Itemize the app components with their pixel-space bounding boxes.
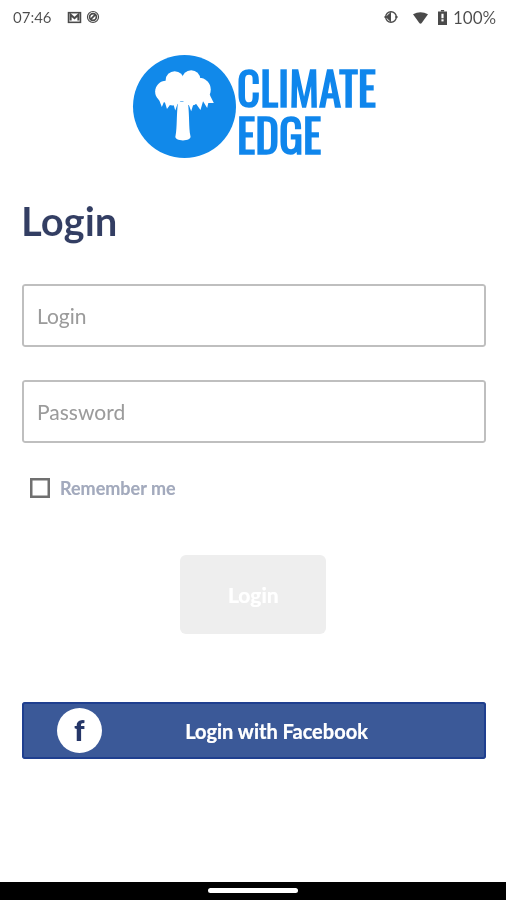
- staticText: EDGE: [237, 100, 322, 167]
- staticText: f: [74, 712, 85, 747]
- staticText: 100%: [453, 7, 497, 27]
- button[interactable]: Remember me: [30, 477, 176, 499]
- button[interactable]: Password: [22, 380, 486, 443]
- button[interactable]: f: [22, 702, 486, 759]
- button[interactable]: Login: [22, 284, 486, 347]
- staticText: CLIMATE: [237, 53, 377, 120]
- staticText: Login: [21, 197, 118, 245]
- other: Home: [208, 888, 298, 893]
- staticText: 07:46: [13, 8, 52, 26]
- staticText: Password: [37, 399, 126, 424]
- staticText: Remember me: [60, 477, 176, 499]
- staticText: Login with Facebook: [185, 719, 368, 743]
- staticText: Login: [228, 582, 279, 607]
- staticText: Login: [37, 303, 87, 328]
